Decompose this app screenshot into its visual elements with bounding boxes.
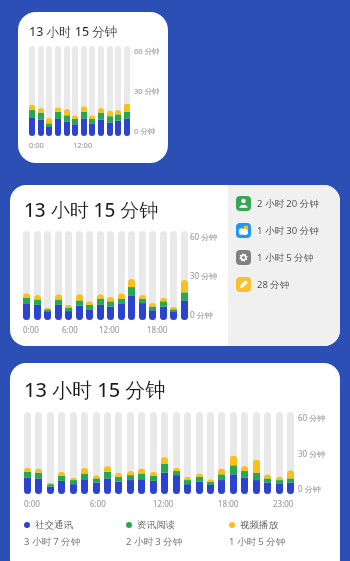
staticText: 12:00 — [99, 324, 120, 338]
staticText: 30 分钟 — [298, 448, 326, 459]
staticText: 13 小时 15 分钟 — [24, 376, 166, 403]
staticText: 18:00 — [147, 324, 168, 338]
staticText: 12:00 — [153, 498, 174, 512]
staticText: 社交通讯 — [35, 519, 73, 531]
staticText: 1 小时 5 分钟 — [229, 535, 286, 548]
staticText: 视频播放 — [240, 519, 278, 531]
staticText: 28 分钟 — [257, 278, 290, 291]
staticText: 30 分钟 — [190, 270, 218, 281]
button[interactable]: 13 小时 15 分钟 — [10, 185, 340, 346]
staticText: 23:00 — [273, 498, 294, 512]
button[interactable]: Notes — [236, 277, 340, 292]
button[interactable]: Weather — [236, 223, 340, 238]
staticText: 1 小时 5 分钟 — [257, 251, 314, 264]
button[interactable]: 视频播放 — [229, 519, 332, 548]
staticText: 60 分钟 — [190, 231, 218, 242]
staticText: 3 小时 7 分钟 — [24, 535, 81, 548]
button[interactable]: Contacts — [236, 196, 340, 211]
staticText: 13 小时 15 分钟 — [29, 23, 118, 40]
staticText: 18:00 — [218, 498, 239, 512]
staticText: 0:00 — [24, 498, 40, 512]
staticText: 1 小时 30 分钟 — [257, 224, 319, 237]
staticText: 30 分钟 — [134, 86, 160, 96]
staticText: 0:00 — [29, 140, 44, 154]
button[interactable]: 资讯阅读 — [126, 519, 229, 548]
staticText: 6:00 — [90, 498, 106, 512]
staticText: 0 分钟 — [134, 126, 156, 136]
staticText: 60 分钟 — [298, 412, 326, 423]
button[interactable]: Settings — [236, 250, 340, 265]
button[interactable]: 社交通讯 — [24, 519, 126, 548]
staticText: 2 小时 3 分钟 — [126, 535, 183, 548]
staticText: 12:00 — [73, 140, 93, 154]
staticText: 6:00 — [62, 324, 78, 338]
staticText: 13 小时 15 分钟 — [24, 197, 159, 223]
other: Weather — [236, 223, 251, 238]
other: Settings — [236, 250, 251, 265]
staticText: 资讯阅读 — [137, 519, 175, 531]
button[interactable]: 13 小时 15 分钟 — [18, 12, 168, 163]
staticText: 60 分钟 — [134, 46, 160, 56]
staticText: 0 分钟 — [190, 309, 213, 320]
staticText: 2 小时 20 分钟 — [257, 197, 319, 210]
staticText: 0 分钟 — [298, 483, 321, 494]
other: Notes — [236, 277, 251, 292]
staticText: 0:00 — [23, 324, 39, 338]
other: Contacts — [236, 196, 251, 211]
button[interactable]: 13 小时 15 分钟 — [10, 363, 340, 561]
